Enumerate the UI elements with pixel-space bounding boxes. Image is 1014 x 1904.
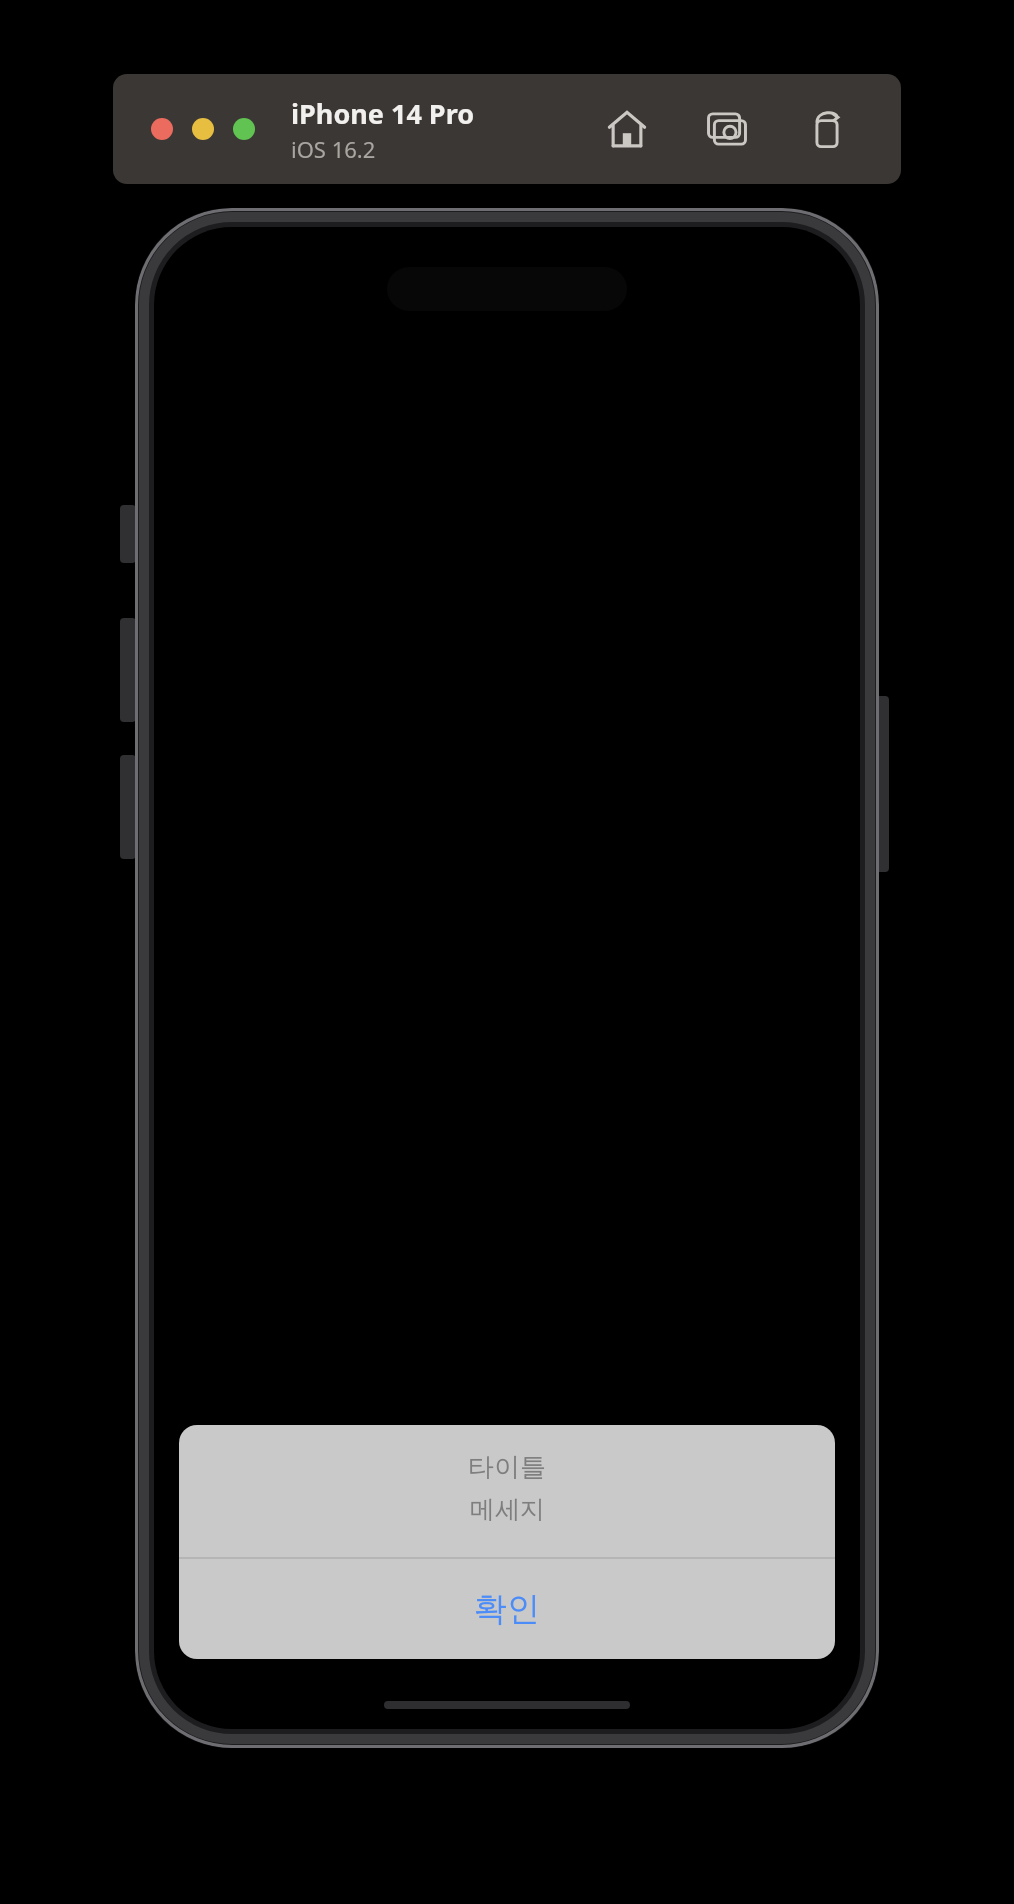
button[interactable]: 확인 [179, 1559, 835, 1659]
button[interactable]: Screenshot [701, 103, 753, 155]
button[interactable]: Home [601, 103, 653, 155]
button[interactable]: Rotate [801, 103, 853, 155]
button[interactable] [151, 118, 173, 140]
button[interactable] [192, 118, 214, 140]
staticText: iOS 16.2 [291, 134, 376, 164]
staticText: iPhone 14 Pro [291, 95, 475, 132]
button[interactable] [233, 118, 255, 140]
staticText: 메세지 [470, 1494, 545, 1525]
staticText: 타이틀 [468, 1451, 546, 1484]
staticText: 확인 [474, 1588, 540, 1630]
